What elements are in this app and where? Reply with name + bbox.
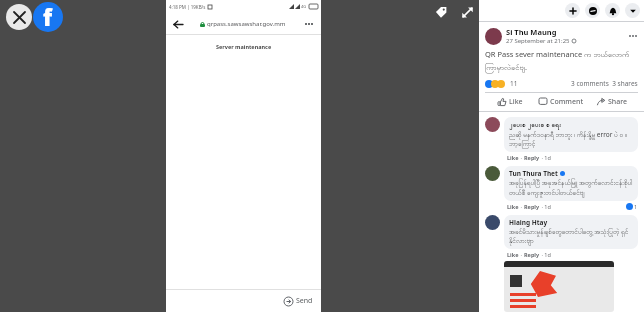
button[interactable]: Menu	[625, 3, 640, 18]
staticText: ၂ပေးစ ၂ပေးစ စ ရေး	[509, 120, 562, 130]
staticText: 11	[510, 79, 518, 88]
staticText: အခုပြန်ရပါပြီ အခုအင်နယ်မြူ အတွက်လောင်းငန…	[509, 178, 633, 198]
staticText: 1	[634, 203, 638, 210]
staticText: f	[43, 2, 53, 32]
button[interactable]: Hlaing Htay	[504, 215, 638, 249]
staticText: QR Pass sever maintenance က ဘယ်လောက်ကြာမ…	[485, 49, 638, 73]
staticText: ·	[519, 251, 524, 258]
staticText: Server maintenance	[216, 43, 272, 50]
button[interactable]: Reply	[524, 251, 540, 258]
button[interactable]: Reply	[524, 203, 540, 210]
staticText: 27 September at 21:25	[506, 37, 572, 45]
button[interactable]: Expand	[459, 4, 475, 20]
staticText: Tun Thura Thet	[509, 169, 558, 178]
button[interactable]: Like	[485, 93, 536, 111]
staticText: ညဆို မနက်၁၀နာရီ ဘာဘူး ၊ ကိန်းနိူ့မှူ err…	[509, 130, 633, 149]
button[interactable]: Reply	[524, 154, 540, 161]
button[interactable]: Comment	[536, 93, 587, 111]
button[interactable]: Like	[507, 154, 519, 161]
staticText: 4:18 PM | 19KB/s	[169, 4, 206, 10]
staticText: 4G	[301, 4, 307, 9]
button[interactable]	[485, 215, 500, 230]
button[interactable]: Post options	[626, 29, 640, 43]
staticText: Share	[608, 97, 628, 107]
staticText: အခင်မိသားမှုန်ချစ်တွေတောင်ပါတွေ့ အသုံးပြ…	[509, 227, 633, 246]
staticText: ·	[519, 154, 524, 161]
button[interactable]: Tag	[433, 4, 449, 20]
button[interactable]: Like	[507, 251, 519, 258]
button[interactable]: More options	[302, 17, 316, 31]
button[interactable]: Back	[171, 17, 185, 31]
button[interactable]: Tun Thura Thet	[504, 166, 638, 201]
button[interactable]: Messenger	[585, 3, 600, 18]
staticText: · 1d	[540, 154, 551, 161]
button[interactable]: Create	[565, 3, 580, 18]
staticText: · 1d	[540, 203, 551, 210]
staticText: qrpass.sawsawshar.gov.mm	[207, 20, 286, 28]
button[interactable]	[485, 117, 500, 132]
button[interactable]: Close	[6, 4, 32, 30]
button[interactable]	[485, 28, 502, 45]
staticText: ·	[519, 203, 524, 210]
button[interactable]	[485, 166, 500, 181]
button[interactable]: Facebook	[33, 2, 63, 32]
staticText: Comment	[550, 97, 584, 107]
button[interactable]: ၂ပေးစ ၂ပေးစ စ ရေး	[504, 117, 638, 152]
staticText: Like	[509, 97, 523, 107]
staticText: Si Thu Maung	[506, 27, 557, 37]
staticText: 3 comments 3 shares	[571, 79, 638, 88]
button[interactable]	[504, 261, 614, 312]
staticText: Hlaing Htay	[509, 218, 548, 227]
button[interactable]: Like	[507, 203, 519, 210]
staticText: Send	[296, 296, 313, 306]
button[interactable]: Notifications	[605, 3, 620, 18]
staticText: · 1d	[540, 251, 551, 258]
button[interactable]: Share	[587, 93, 638, 111]
button[interactable]: Send	[282, 294, 315, 308]
